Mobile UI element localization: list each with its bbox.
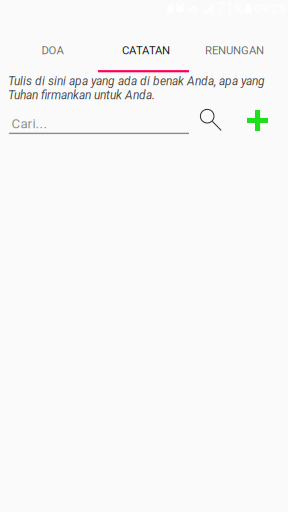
button[interactable]: Add note: [241, 104, 273, 136]
staticText: CATATAN: [122, 44, 170, 57]
staticText: RENUNGAN: [205, 44, 264, 57]
button[interactable]: RENUNGAN: [189, 34, 279, 66]
button[interactable]: Search: [195, 104, 227, 136]
staticText: Cari...: [11, 116, 47, 132]
staticText: DOA: [41, 44, 63, 57]
button[interactable]: CATATAN: [101, 34, 191, 66]
staticText: Tulis di sini apa yang ada di benak Anda…: [8, 74, 265, 102]
button[interactable]: DOA: [7, 34, 97, 66]
